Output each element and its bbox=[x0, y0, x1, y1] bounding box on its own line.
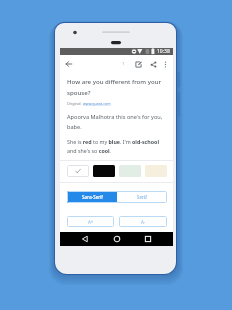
button[interactable]: www.quora.com bbox=[83, 101, 111, 106]
button[interactable]: Home bbox=[110, 232, 124, 246]
button[interactable]: Black theme bbox=[93, 165, 115, 177]
button[interactable]: Sans-Serif bbox=[67, 191, 117, 203]
button[interactable]: Recent apps bbox=[141, 232, 155, 246]
staticText: Original: bbox=[67, 101, 83, 106]
staticText: She is red to my blue. I'm old-school an… bbox=[67, 138, 165, 155]
staticText: A+ bbox=[88, 219, 94, 225]
staticText: Apoorva Malhotra this one's for you, bab… bbox=[67, 113, 165, 131]
staticText: Sans-Serif bbox=[82, 194, 103, 200]
button[interactable]: A- bbox=[119, 216, 167, 227]
staticText: 10:38 bbox=[157, 48, 170, 55]
button[interactable]: White theme bbox=[67, 165, 89, 177]
button[interactable]: A+ bbox=[67, 216, 114, 227]
button[interactable]: Back bbox=[63, 58, 75, 70]
button[interactable]: Serif bbox=[117, 191, 167, 203]
button[interactable]: Share bbox=[148, 59, 158, 69]
staticText: A- bbox=[141, 219, 146, 225]
button[interactable]: Back bbox=[78, 232, 92, 246]
button[interactable]: Edit note bbox=[133, 59, 143, 69]
button[interactable]: More options bbox=[161, 60, 170, 69]
staticText: How are you different from your spouse? bbox=[67, 77, 165, 96]
staticText: Serif bbox=[137, 194, 147, 200]
staticText: 1 bbox=[122, 61, 125, 67]
